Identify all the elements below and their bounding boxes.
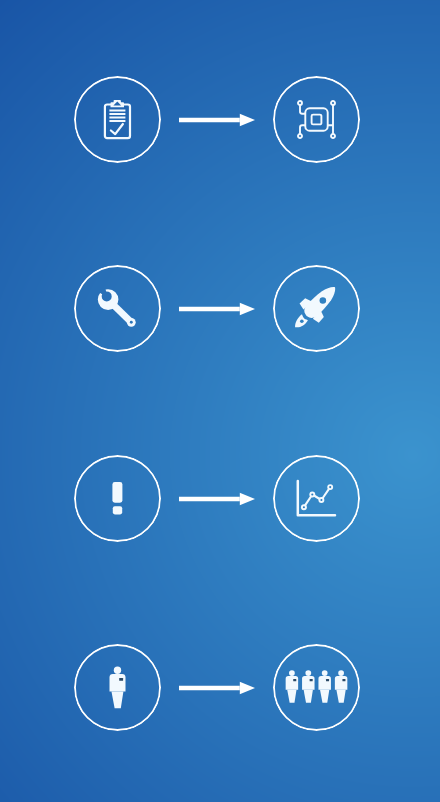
button[interactable]: Incidents (74, 455, 161, 542)
button[interactable]: Manual checklist (74, 76, 161, 163)
button[interactable]: Whole team (273, 644, 360, 731)
other: transforms into (179, 680, 255, 696)
button[interactable]: Fast delivery (273, 265, 360, 352)
other: transforms into (179, 112, 255, 128)
button[interactable]: Insights (273, 455, 360, 542)
other: transforms into (179, 491, 255, 507)
button[interactable]: Automated system (273, 76, 360, 163)
button[interactable]: Maintenance work (74, 265, 161, 352)
other: transforms into (179, 301, 255, 317)
button[interactable]: One person (74, 644, 161, 731)
